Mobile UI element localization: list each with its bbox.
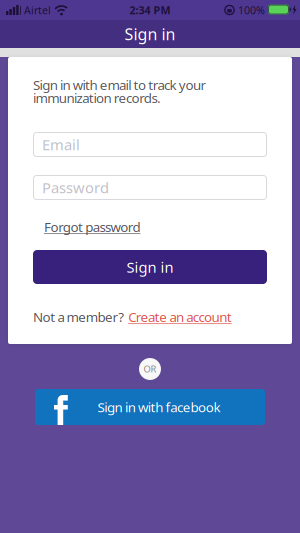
staticText: 100% — [238, 3, 265, 17]
staticText: Sign in — [124, 23, 175, 45]
button[interactable]: Sign in with facebook — [35, 389, 265, 425]
staticText: Email — [42, 135, 80, 154]
staticText: Not a member? — [33, 308, 124, 326]
staticText: Sign in with email to track your — [33, 76, 207, 94]
staticText: Sign in — [126, 257, 173, 277]
staticText: immunization records. — [33, 89, 161, 107]
button[interactable]: Sign in — [33, 250, 267, 284]
staticText: Sign in with facebook — [97, 398, 220, 416]
staticText: OR — [143, 363, 156, 375]
button[interactable]: Password — [33, 175, 267, 200]
button[interactable]: Email — [33, 132, 267, 157]
staticText: Forgot password — [44, 218, 140, 236]
staticText: Create an account — [128, 308, 232, 326]
staticText: Airtel — [24, 3, 51, 17]
button[interactable]: Create an account — [128, 308, 232, 326]
staticText: 2:34 PM — [129, 3, 170, 17]
staticText: Password — [42, 178, 109, 197]
button[interactable]: Forgot password — [44, 218, 140, 236]
